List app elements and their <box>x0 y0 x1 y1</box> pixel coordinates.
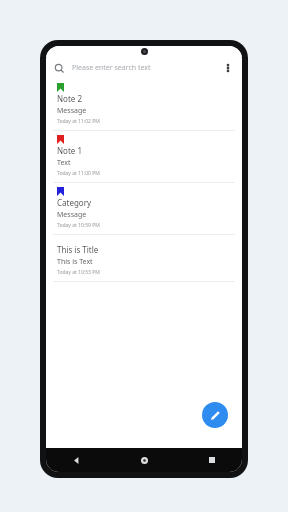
button[interactable]: More options <box>221 61 235 75</box>
staticText: Today at 11:00 PM <box>57 170 100 177</box>
button[interactable]: Note 1 <box>46 131 242 182</box>
button[interactable]: This is Title <box>46 235 242 281</box>
staticText: Note 2 <box>57 93 82 104</box>
staticText: Message <box>57 106 87 116</box>
button[interactable]: Note 2 <box>46 79 242 130</box>
staticText: Text <box>57 158 71 168</box>
button[interactable]: Recent apps <box>204 452 220 468</box>
button[interactable]: New note <box>202 402 228 428</box>
button[interactable]: Category <box>46 183 242 234</box>
staticText: This is Title <box>57 244 99 255</box>
staticText: Today at 10:59 PM <box>57 222 100 229</box>
button[interactable]: Home <box>136 452 152 468</box>
staticText: Category <box>57 197 92 208</box>
staticText: This is Text <box>57 257 93 267</box>
staticText: Today at 10:53 PM <box>57 269 100 276</box>
button[interactable]: Search <box>46 57 242 79</box>
staticText: Please enter search text <box>72 63 221 73</box>
staticText: Note 1 <box>57 145 82 156</box>
staticText: Today at 11:02 PM <box>57 118 100 125</box>
other: Search <box>54 63 65 74</box>
staticText: Message <box>57 210 87 220</box>
button[interactable]: Back <box>68 452 84 468</box>
